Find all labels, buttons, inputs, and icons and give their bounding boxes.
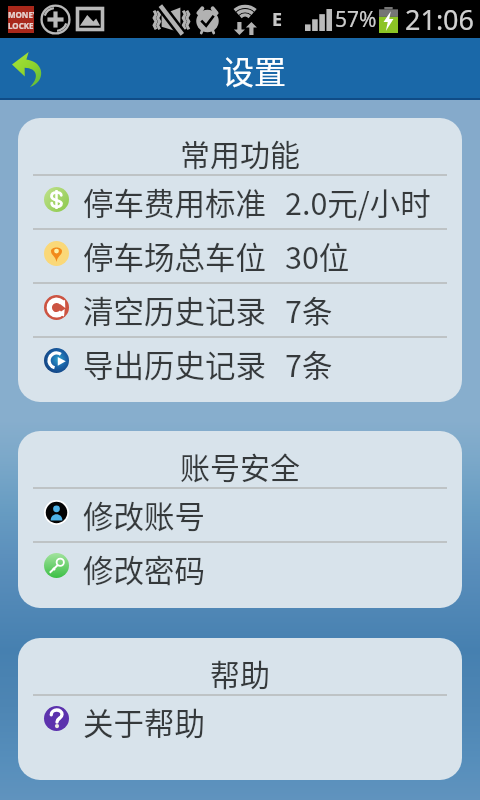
- staticText: 账号安全: [180, 444, 300, 487]
- staticText: 21:06: [405, 1, 475, 38]
- button[interactable]: 关于帮助: [18, 696, 462, 747]
- staticText: 帮助: [210, 651, 270, 694]
- staticText: 2.0元/小时: [285, 180, 431, 224]
- staticText: 清空历史记录: [83, 288, 266, 332]
- staticText: 导出历史记录: [83, 342, 266, 386]
- staticText: LOCKER: [8, 20, 34, 31]
- staticText: 修改账号: [83, 493, 205, 537]
- button[interactable]: 清空历史记录: [18, 284, 462, 336]
- staticText: E: [272, 7, 283, 32]
- button[interactable]: 停车费用标准: [18, 176, 462, 228]
- staticText: 设置: [222, 47, 287, 93]
- staticText: 常用功能: [180, 131, 300, 174]
- button[interactable]: 修改账号: [18, 489, 462, 541]
- button[interactable]: 停车场总车位: [18, 230, 462, 282]
- staticText: 7条: [285, 342, 333, 386]
- staticText: 关于帮助: [83, 700, 205, 744]
- staticText: 停车费用标准: [83, 180, 266, 224]
- staticText: 修改密码: [83, 547, 205, 591]
- staticText: MONEY: [8, 9, 34, 20]
- staticText: 停车场总车位: [83, 234, 266, 278]
- button[interactable]: Back: [2, 43, 54, 95]
- staticText: 57%: [335, 5, 377, 34]
- button[interactable]: 修改密码: [18, 543, 462, 594]
- staticText: 7条: [285, 288, 333, 332]
- button[interactable]: 导出历史记录: [18, 338, 462, 389]
- staticText: 30位: [285, 234, 350, 278]
